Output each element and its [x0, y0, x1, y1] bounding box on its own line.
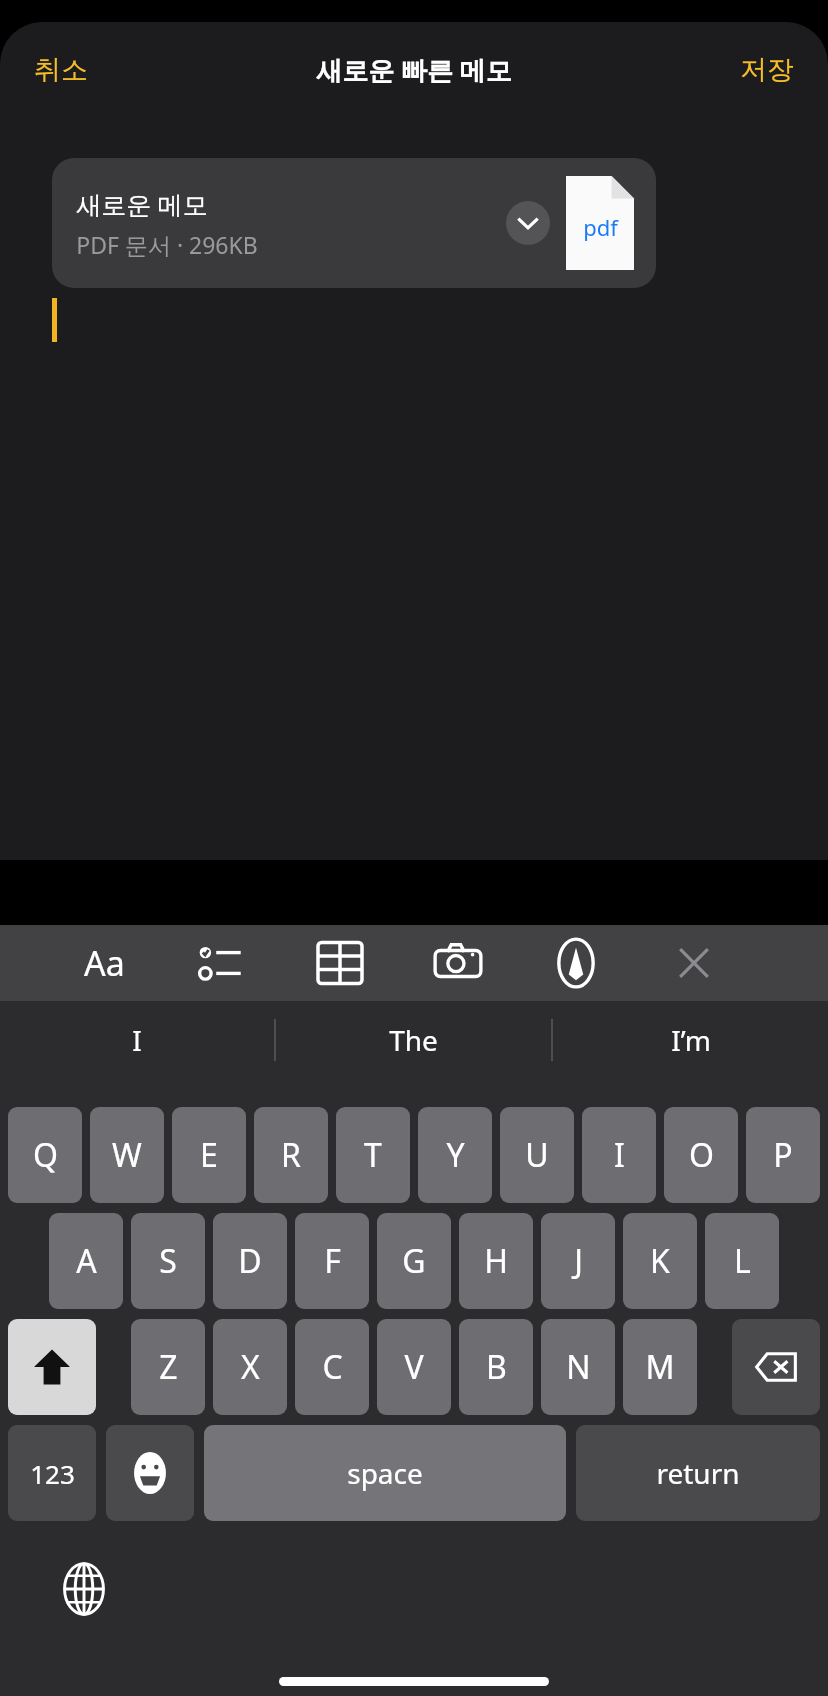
- staticText: R: [281, 1133, 301, 1177]
- staticText: N: [566, 1345, 591, 1389]
- staticText: space: [347, 1454, 423, 1492]
- staticText: 취소: [34, 53, 88, 87]
- button[interactable]: D: [213, 1213, 287, 1309]
- button[interactable]: space: [204, 1425, 566, 1521]
- button[interactable]: Shift: [8, 1319, 96, 1415]
- staticText: F: [324, 1239, 341, 1283]
- button[interactable]: O: [664, 1107, 738, 1203]
- staticText: S: [159, 1239, 177, 1283]
- staticText: D: [238, 1239, 262, 1283]
- button[interactable]: Close: [652, 925, 736, 1001]
- button[interactable]: Z: [131, 1319, 205, 1415]
- button[interactable]: R: [254, 1107, 328, 1203]
- button[interactable]: 123: [8, 1425, 96, 1521]
- button[interactable]: N: [541, 1319, 615, 1415]
- button[interactable]: Checklist: [180, 925, 264, 1001]
- button[interactable]: K: [623, 1213, 697, 1309]
- button[interactable]: Emoji: [106, 1425, 194, 1521]
- button[interactable]: Markup: [534, 925, 618, 1001]
- button[interactable]: F: [295, 1213, 369, 1309]
- staticText: I: [132, 1021, 142, 1059]
- button[interactable]: W: [90, 1107, 164, 1203]
- button[interactable]: P: [746, 1107, 820, 1203]
- staticText: B: [486, 1345, 507, 1389]
- button[interactable]: I’m: [553, 1001, 828, 1079]
- staticText: 저장: [740, 53, 794, 87]
- staticText: Z: [159, 1345, 178, 1389]
- button[interactable]: Table: [298, 925, 382, 1001]
- staticText: I’m: [671, 1021, 711, 1059]
- button[interactable]: Y: [418, 1107, 492, 1203]
- staticText: return: [656, 1454, 740, 1492]
- staticText: L: [734, 1239, 751, 1283]
- button[interactable]: J: [541, 1213, 615, 1309]
- button[interactable]: A: [49, 1213, 123, 1309]
- staticText: pdf: [583, 212, 618, 242]
- button[interactable]: L: [705, 1213, 779, 1309]
- button[interactable]: Camera: [416, 925, 500, 1001]
- staticText: V: [404, 1345, 424, 1389]
- staticText: K: [650, 1239, 670, 1283]
- button[interactable]: H: [459, 1213, 533, 1309]
- button[interactable]: Change keyboard: [46, 1551, 122, 1627]
- staticText: A: [76, 1239, 97, 1283]
- staticText: PDF 문서 · 296KB: [76, 229, 258, 260]
- staticText: H: [484, 1239, 508, 1283]
- staticText: G: [402, 1239, 426, 1283]
- staticText: C: [322, 1345, 343, 1389]
- button[interactable]: Backspace: [732, 1319, 820, 1415]
- button[interactable]: X: [213, 1319, 287, 1415]
- button[interactable]: Q: [8, 1107, 82, 1203]
- button[interactable]: S: [131, 1213, 205, 1309]
- staticText: 새로운 빠른 메모: [316, 52, 512, 88]
- staticText: O: [689, 1133, 714, 1177]
- staticText: M: [645, 1345, 675, 1389]
- staticText: The: [389, 1021, 438, 1059]
- button[interactable]: M: [623, 1319, 697, 1415]
- button[interactable]: G: [377, 1213, 451, 1309]
- staticText: P: [773, 1133, 793, 1177]
- button[interactable]: return: [576, 1425, 820, 1521]
- staticText: Aa: [84, 940, 125, 986]
- staticText: T: [364, 1133, 382, 1177]
- staticText: Q: [33, 1133, 58, 1177]
- staticText: 새로운 메모: [76, 187, 208, 221]
- button[interactable]: U: [500, 1107, 574, 1203]
- staticText: I: [614, 1133, 625, 1177]
- button[interactable]: 취소: [18, 43, 104, 97]
- button[interactable]: I: [582, 1107, 656, 1203]
- button[interactable]: I: [0, 1001, 274, 1079]
- staticText: U: [525, 1133, 549, 1177]
- staticText: E: [200, 1133, 218, 1177]
- staticText: 123: [30, 1456, 75, 1491]
- button[interactable]: Format text: [62, 925, 146, 1001]
- button[interactable]: 저장: [724, 43, 810, 97]
- button[interactable]: C: [295, 1319, 369, 1415]
- staticText: W: [112, 1133, 142, 1177]
- button[interactable]: 새로운 메모: [52, 158, 656, 288]
- button[interactable]: B: [459, 1319, 533, 1415]
- staticText: X: [241, 1345, 260, 1389]
- button[interactable]: The: [276, 1001, 551, 1079]
- staticText: Y: [446, 1133, 465, 1177]
- button[interactable]: V: [377, 1319, 451, 1415]
- button[interactable]: T: [336, 1107, 410, 1203]
- button[interactable]: E: [172, 1107, 246, 1203]
- staticText: J: [574, 1239, 583, 1283]
- button[interactable]: More options: [506, 201, 550, 245]
